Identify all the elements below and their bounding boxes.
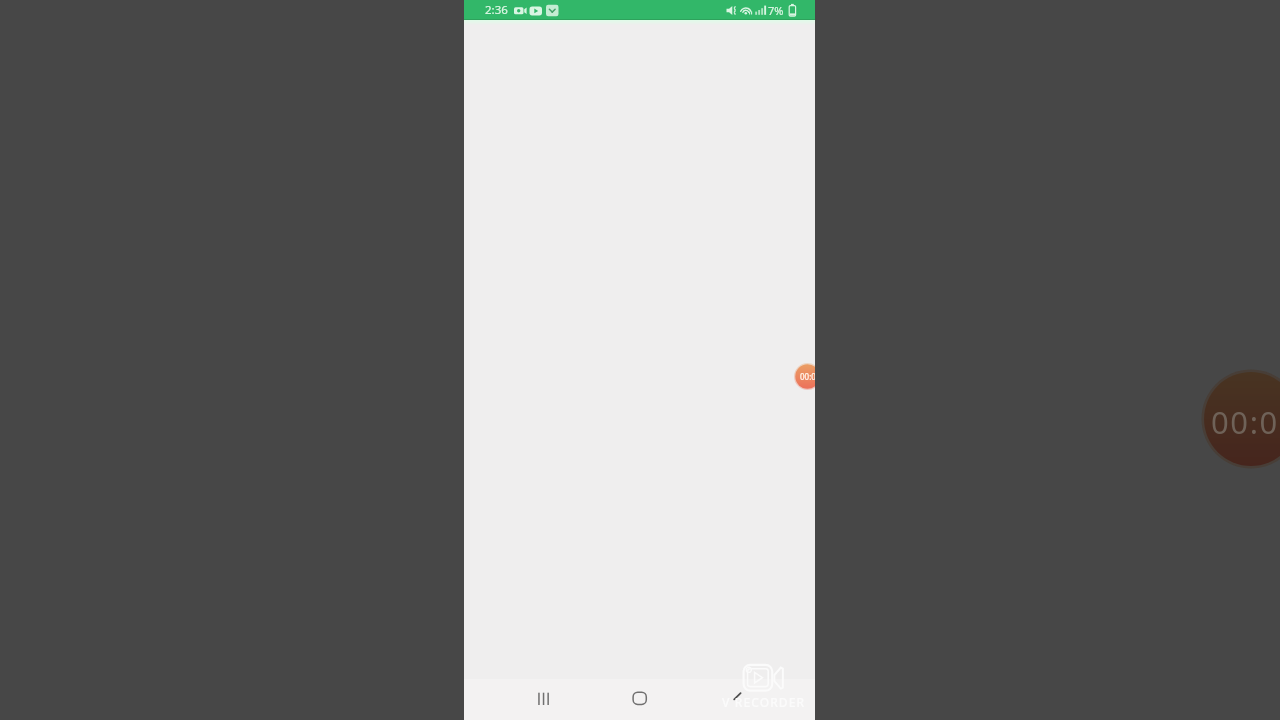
- staticText: 7%: [768, 3, 784, 18]
- staticText: 2:36: [485, 2, 508, 18]
- button[interactable]: [718, 681, 756, 719]
- button[interactable]: [621, 681, 659, 719]
- staticText: 00:00: [1211, 401, 1280, 439]
- button[interactable]: [524, 681, 562, 719]
- staticText: 00:0: [800, 371, 815, 382]
- button[interactable]: 00:0: [794, 363, 815, 390]
- staticText: V RECORDER: [722, 694, 806, 710]
